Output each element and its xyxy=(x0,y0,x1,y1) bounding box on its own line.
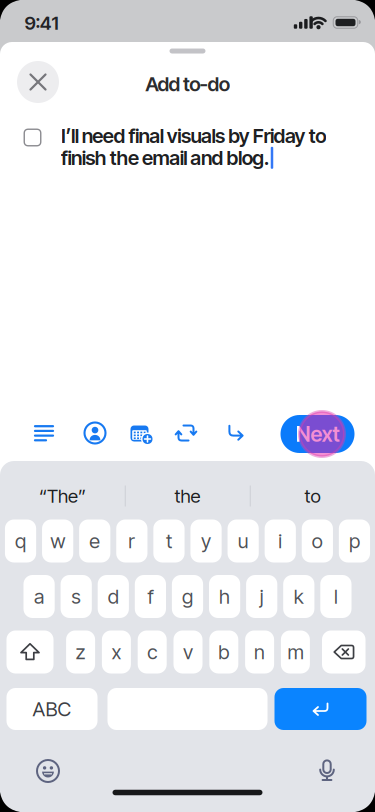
staticText: m xyxy=(287,640,303,664)
button[interactable]: g xyxy=(172,575,203,618)
button[interactable]: Next xyxy=(280,415,354,453)
staticText: l xyxy=(334,585,338,608)
button[interactable]: Add date xyxy=(128,421,152,445)
staticText: f xyxy=(147,585,153,608)
staticText: p xyxy=(349,529,360,553)
button[interactable]: i xyxy=(265,519,296,562)
staticText: Next xyxy=(295,421,339,447)
staticText: q xyxy=(15,529,26,553)
staticText: w xyxy=(50,529,65,553)
button[interactable]: b xyxy=(209,630,238,673)
button[interactable]: ABC xyxy=(6,688,97,730)
staticText: k xyxy=(294,585,304,608)
button[interactable]: j xyxy=(246,575,277,618)
staticText: j xyxy=(260,585,264,608)
button[interactable]: Delete xyxy=(322,630,365,673)
staticText: t xyxy=(166,529,172,553)
staticText: finish the email and blog. xyxy=(61,146,270,170)
button[interactable]: p xyxy=(339,519,370,562)
button[interactable]: o xyxy=(302,519,333,562)
staticText: ABC xyxy=(32,697,71,721)
button[interactable]: Move xyxy=(223,421,247,445)
button[interactable]: w xyxy=(42,519,73,562)
staticText: e xyxy=(89,529,100,553)
staticText: c xyxy=(147,640,157,664)
staticText: Add to-do xyxy=(145,72,230,96)
staticText: “The” xyxy=(39,485,86,507)
staticText: i xyxy=(278,529,282,553)
staticText: y xyxy=(201,529,211,553)
button[interactable]: k xyxy=(283,575,314,618)
button[interactable]: “The” xyxy=(7,478,117,514)
button[interactable]: u xyxy=(228,519,259,562)
button[interactable]: Emoji xyxy=(36,759,60,783)
staticText: the xyxy=(174,485,200,507)
staticText: b xyxy=(218,640,229,664)
staticText: I’ll need final visuals by Friday to xyxy=(61,124,326,148)
staticText: d xyxy=(108,585,119,608)
staticText: h xyxy=(219,585,230,608)
button[interactable]: x xyxy=(102,630,131,673)
button[interactable]: Notes xyxy=(32,421,56,445)
button[interactable]: l xyxy=(320,575,351,618)
button[interactable]: Return xyxy=(274,688,366,730)
button[interactable]: y xyxy=(190,519,222,562)
button[interactable]: Shift xyxy=(6,630,53,673)
button[interactable]: Close xyxy=(17,61,59,103)
button[interactable]: s xyxy=(61,575,92,618)
button[interactable]: Dictate xyxy=(315,759,339,783)
button[interactable]: d xyxy=(98,575,129,618)
staticText: z xyxy=(76,640,86,664)
staticText: n xyxy=(254,640,265,664)
button[interactable]: the xyxy=(132,478,242,514)
button[interactable]: a xyxy=(23,575,55,618)
staticText: u xyxy=(238,529,249,553)
button[interactable]: Assign xyxy=(83,421,107,445)
button[interactable]: q xyxy=(5,519,36,562)
staticText: g xyxy=(182,585,193,608)
button[interactable]: t xyxy=(153,519,185,562)
button[interactable]: z xyxy=(66,630,95,673)
staticText: 9:41 xyxy=(24,12,58,34)
staticText: to xyxy=(304,485,320,507)
button[interactable]: Mark complete xyxy=(24,129,41,146)
button[interactable]: h xyxy=(209,575,240,618)
button[interactable]: n xyxy=(245,630,274,673)
button[interactable]: v xyxy=(173,630,202,673)
staticText: x xyxy=(111,640,121,664)
staticText: a xyxy=(34,585,44,608)
button[interactable]: e xyxy=(79,519,110,562)
button[interactable]: f xyxy=(135,575,166,618)
staticText: r xyxy=(128,529,135,553)
staticText: s xyxy=(71,585,81,608)
staticText: v xyxy=(183,640,193,664)
button[interactable]: c xyxy=(138,630,167,673)
button[interactable]: Repeat xyxy=(174,421,198,445)
button[interactable]: m xyxy=(281,630,310,673)
button[interactable]: r xyxy=(116,519,147,562)
button[interactable]: to xyxy=(257,478,367,514)
staticText: o xyxy=(312,529,323,553)
